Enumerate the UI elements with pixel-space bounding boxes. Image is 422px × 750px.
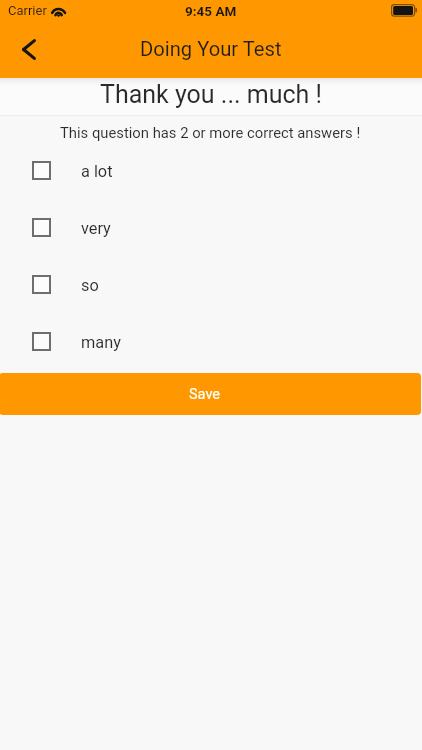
staticText: a lot: [81, 162, 113, 181]
staticText: This question has 2 or more correct answ…: [60, 124, 361, 141]
staticText: Save: [189, 386, 221, 403]
button[interactable]: very: [0, 199, 422, 256]
staticText: many: [81, 333, 121, 352]
staticText: 9:45 AM: [185, 3, 237, 19]
button[interactable]: Back: [5, 25, 53, 73]
button[interactable]: many: [0, 313, 422, 370]
button[interactable]: a lot: [0, 142, 422, 199]
staticText: very: [81, 219, 111, 238]
button[interactable]: Save: [0, 373, 421, 415]
staticText: Thank you ... much !: [100, 80, 323, 109]
staticText: so: [81, 276, 99, 295]
staticText: Carrier: [8, 3, 47, 18]
staticText: Doing Your Test: [140, 37, 282, 61]
button[interactable]: so: [0, 256, 422, 313]
